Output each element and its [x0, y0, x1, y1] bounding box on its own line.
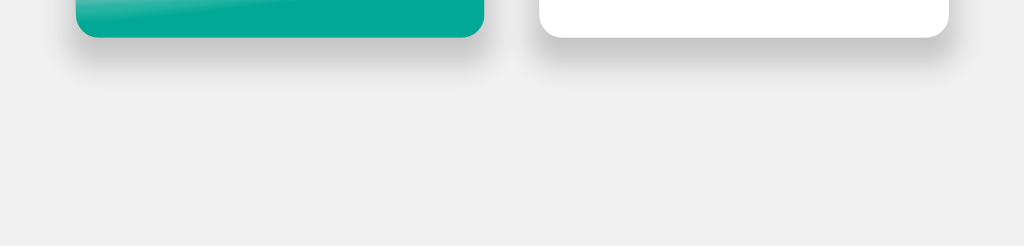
button[interactable]: Cancel [539, 0, 949, 38]
button[interactable]: Confirm [76, 0, 485, 38]
